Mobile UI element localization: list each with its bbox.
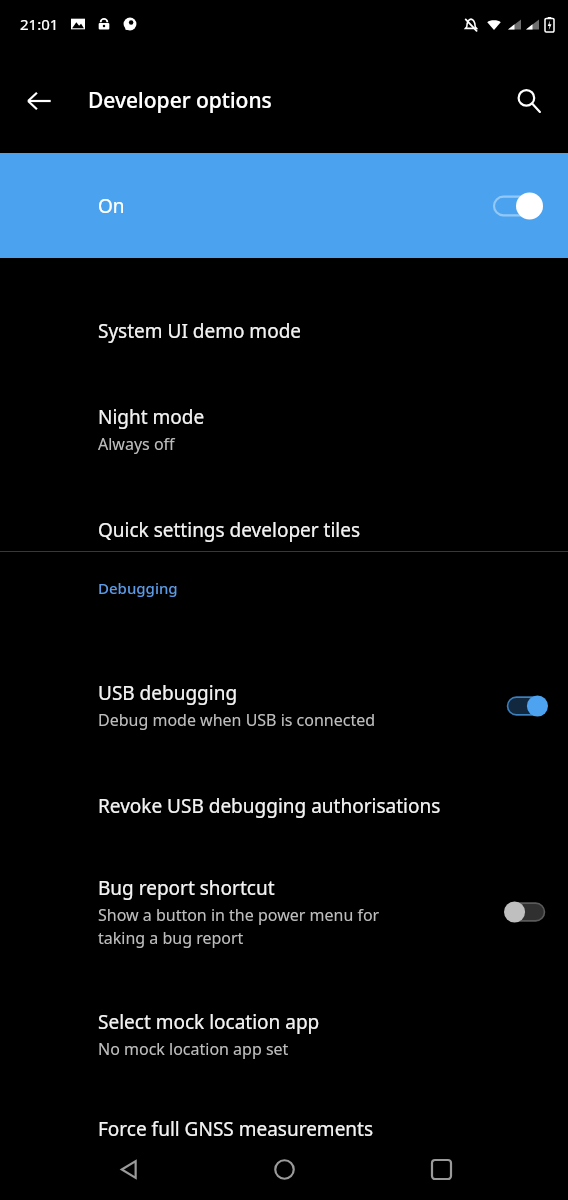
staticText: No mock location app set xyxy=(98,1038,289,1060)
button[interactable]: Select mock location app xyxy=(0,949,568,1060)
button[interactable]: Force full GNSS measurements xyxy=(0,1060,568,1190)
staticText: System UI demo mode xyxy=(98,318,302,344)
staticText: Developer options xyxy=(88,86,272,115)
button[interactable]: Recent apps xyxy=(412,1140,470,1198)
button[interactable]: Back xyxy=(99,1140,157,1198)
button[interactable]: Revoke USB debugging authorisations xyxy=(0,731,568,819)
button[interactable]: Home xyxy=(255,1140,313,1198)
button[interactable]: USB debugging xyxy=(0,622,568,731)
staticText: Select mock location app xyxy=(98,1009,320,1035)
staticText: Show a button in the power menu for taki… xyxy=(98,904,380,949)
button[interactable]: Quick settings developer tiles xyxy=(0,455,568,543)
staticText: Force full GNSS measurements xyxy=(98,1116,374,1142)
button[interactable]: Bug report shortcut xyxy=(0,819,568,949)
staticText: USB debugging xyxy=(98,680,238,706)
staticText: Night mode xyxy=(98,404,205,430)
button[interactable]: Bug report shortcut xyxy=(504,895,548,929)
staticText: Quick settings developer tiles xyxy=(98,517,361,543)
staticText: Debugging xyxy=(98,578,178,598)
button[interactable]: Night mode xyxy=(0,344,568,455)
button[interactable]: System UI demo mode xyxy=(0,258,568,344)
staticText: Always off xyxy=(98,433,175,455)
staticText: 21:01 xyxy=(20,14,59,34)
staticText: Bug report shortcut xyxy=(98,875,275,901)
staticText: Revoke USB debugging authorisations xyxy=(98,793,441,819)
button[interactable]: Search xyxy=(498,70,560,132)
button[interactable]: Back xyxy=(8,70,70,132)
staticText: On xyxy=(98,193,125,219)
button[interactable]: On xyxy=(0,153,568,258)
staticText: Debug mode when USB is connected xyxy=(98,709,376,731)
button[interactable]: USB debugging xyxy=(504,689,548,723)
staticText: Track all GNSS constellations and freque… xyxy=(98,1145,346,1190)
